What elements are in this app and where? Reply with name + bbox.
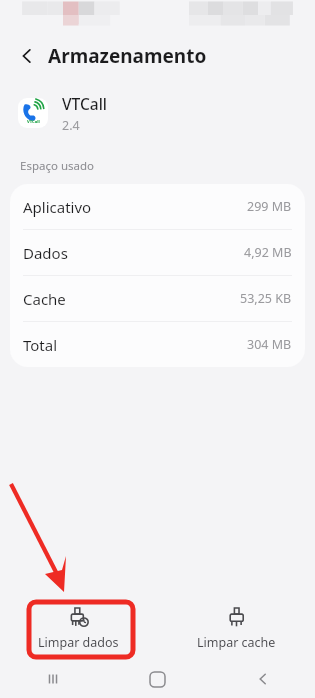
button[interactable]: Recent apps <box>0 660 105 698</box>
staticText: Armazenamento <box>48 43 207 69</box>
button[interactable]: Limpar dados <box>0 598 157 660</box>
button[interactable]: Back <box>210 660 315 698</box>
button[interactable]: Limpar cache <box>157 598 315 660</box>
staticText: 299 MB <box>247 198 292 215</box>
button[interactable]: Cache <box>10 276 305 321</box>
staticText: Limpar cache <box>197 634 276 651</box>
button[interactable]: Aplicativo <box>10 184 305 229</box>
button[interactable]: Dados <box>10 230 305 275</box>
staticText: 2.4 <box>62 117 80 134</box>
staticText: VTCall <box>62 93 108 114</box>
staticText: Limpar dados <box>38 634 119 651</box>
staticText: 4,92 MB <box>244 244 292 261</box>
staticText: Aplicativo <box>23 197 92 217</box>
staticText: Cache <box>23 289 66 309</box>
staticText: 304 MB <box>247 336 292 353</box>
staticText: Dados <box>23 243 68 263</box>
button[interactable]: Total <box>10 322 305 367</box>
staticText: Total <box>23 335 58 355</box>
staticText: 53,25 KB <box>240 290 292 307</box>
button[interactable]: Home <box>105 660 210 698</box>
button[interactable]: Back <box>10 39 44 73</box>
staticText: Espaço usado <box>20 158 94 174</box>
staticText: VTCall <box>27 119 40 125</box>
